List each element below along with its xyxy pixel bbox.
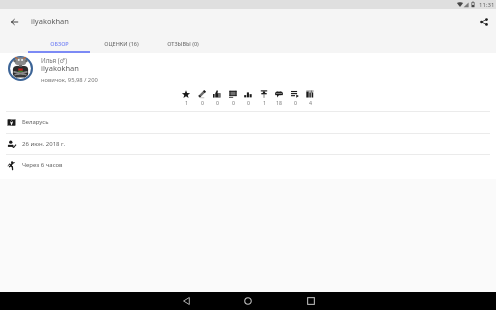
button[interactable]: Stat 1 xyxy=(178,90,194,110)
staticText: Илья (♂) xyxy=(41,56,67,64)
button[interactable]: ОЦЕНКИ (16) xyxy=(90,35,152,53)
button[interactable]: Stat 0 xyxy=(287,90,303,110)
button[interactable]: Беларусь xyxy=(0,111,496,133)
staticText: 18 xyxy=(276,99,282,106)
staticText: новичок, 95,98 / 200 xyxy=(41,76,98,84)
staticText: ilyakokhan xyxy=(31,16,69,26)
staticText: 26 июн. 2018 г. xyxy=(22,140,66,148)
button[interactable]: ОБЗОР xyxy=(28,35,90,53)
button[interactable]: Stat 0 xyxy=(225,90,241,110)
staticText: ilyakokhan xyxy=(41,63,79,73)
button[interactable]: Recent apps xyxy=(302,292,320,310)
button[interactable]: 26 июн. 2018 г. xyxy=(0,133,496,155)
button[interactable]: Через 6 часов xyxy=(0,154,496,176)
button[interactable]: Home xyxy=(239,292,257,310)
button[interactable]: Stat 0 xyxy=(209,90,225,110)
staticText: 0 xyxy=(294,99,297,106)
button[interactable]: Stat 4 xyxy=(302,90,318,110)
button[interactable]: Back xyxy=(177,292,195,310)
button[interactable]: Stat 18 xyxy=(271,90,287,110)
staticText: 1 xyxy=(263,99,266,106)
staticText: Через 6 часов xyxy=(22,161,63,169)
staticText: 0 xyxy=(232,99,235,106)
staticText: Беларусь xyxy=(22,118,49,126)
staticText: 4 xyxy=(309,99,312,106)
staticText: ОЦЕНКИ (16) xyxy=(104,40,139,47)
button[interactable]: Back xyxy=(3,11,25,33)
button[interactable]: Share xyxy=(473,11,495,33)
button[interactable]: ОТЗЫВЫ (0) xyxy=(152,35,214,53)
button[interactable]: Stat 1 xyxy=(256,90,272,110)
staticText: 0 xyxy=(201,99,204,106)
staticText: 1 xyxy=(185,99,188,106)
staticText: ОБЗОР xyxy=(50,40,69,47)
staticText: 0 xyxy=(247,99,250,106)
button[interactable]: Stat 0 xyxy=(194,90,210,110)
staticText: 11:31 xyxy=(479,1,495,9)
staticText: ОТЗЫВЫ (0) xyxy=(167,40,199,47)
staticText: 0 xyxy=(216,99,219,106)
button[interactable]: Stat 0 xyxy=(240,90,256,110)
